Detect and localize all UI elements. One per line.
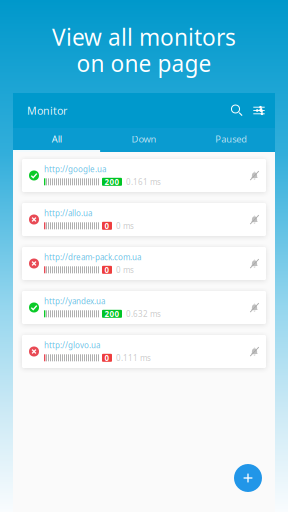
button[interactable]: Filter: [248, 97, 270, 123]
staticText: http://google.ua: [44, 164, 106, 174]
button[interactable]: Search: [226, 97, 248, 123]
staticText: Down: [131, 133, 156, 145]
staticText: 0.111 ms: [116, 352, 151, 363]
button[interactable]: http://glovo.ua: [22, 335, 266, 368]
staticText: 0: [104, 220, 109, 231]
button[interactable]: http://dream-pack.com.ua: [22, 247, 266, 280]
staticText: 200: [104, 308, 119, 319]
staticText: 0.161 ms: [126, 176, 161, 187]
button[interactable]: http://allo.ua: [22, 203, 266, 236]
button[interactable]: Paused: [188, 128, 275, 152]
button[interactable]: http://google.ua: [22, 159, 266, 192]
staticText: Monitor: [27, 103, 67, 118]
staticText: http://allo.ua: [44, 208, 92, 218]
staticText: 0.632 ms: [126, 308, 161, 319]
staticText: http://glovo.ua: [44, 340, 100, 350]
staticText: 0 ms: [116, 264, 134, 275]
staticText: 0: [104, 352, 109, 363]
staticText: View all monitors: [52, 22, 236, 52]
staticText: http://yandex.ua: [44, 296, 105, 306]
button[interactable]: Add monitor: [234, 464, 262, 492]
button[interactable]: All: [13, 128, 100, 152]
staticText: 0 ms: [116, 220, 134, 231]
staticText: Paused: [215, 133, 247, 145]
staticText: http://dream-pack.com.ua: [44, 252, 141, 262]
staticText: on one page: [76, 48, 211, 78]
staticText: 0: [104, 264, 109, 275]
staticText: 200: [104, 176, 119, 187]
button[interactable]: Down: [100, 128, 188, 152]
button[interactable]: http://yandex.ua: [22, 291, 266, 324]
staticText: All: [52, 133, 62, 145]
